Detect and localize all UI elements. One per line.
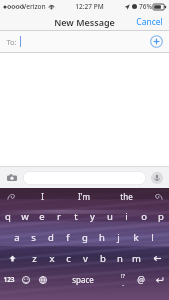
button[interactable]: x bbox=[43, 249, 60, 268]
staticText: 123 bbox=[3, 275, 15, 284]
button[interactable]: space bbox=[51, 270, 114, 289]
button[interactable]: m bbox=[128, 249, 145, 268]
staticText: w bbox=[21, 210, 29, 223]
staticText: c bbox=[66, 252, 71, 265]
staticText: 76% bbox=[139, 2, 152, 11]
staticText: @ bbox=[137, 274, 145, 286]
button[interactable]: d bbox=[42, 228, 59, 247]
button[interactable]: r bbox=[50, 207, 67, 226]
button[interactable]: @ bbox=[132, 270, 149, 289]
button[interactable]: p bbox=[152, 207, 169, 226]
button[interactable]: i bbox=[118, 207, 135, 226]
staticText: t bbox=[74, 210, 78, 223]
button[interactable]: t bbox=[67, 207, 84, 226]
staticText: q bbox=[5, 210, 11, 223]
button[interactable]: the bbox=[105, 188, 147, 204]
button[interactable]: Clipboard bbox=[0, 188, 22, 204]
button[interactable] bbox=[23, 171, 146, 185]
staticText: the bbox=[120, 191, 133, 202]
staticText: k bbox=[133, 231, 139, 244]
button[interactable]: Settings bbox=[147, 188, 169, 204]
button[interactable]: s bbox=[25, 228, 42, 247]
button[interactable]: h bbox=[93, 228, 110, 247]
staticText: e bbox=[39, 210, 45, 223]
staticText: a bbox=[14, 231, 20, 244]
button[interactable]: Shift bbox=[0, 249, 25, 268]
button[interactable]: Voice input bbox=[150, 171, 164, 185]
staticText: New Message bbox=[54, 16, 115, 28]
button[interactable]: l bbox=[144, 228, 161, 247]
staticText: h bbox=[99, 231, 105, 244]
button[interactable]: j bbox=[110, 228, 127, 247]
button[interactable]: v bbox=[77, 249, 94, 268]
button[interactable]: o bbox=[135, 207, 152, 226]
staticText: r bbox=[57, 210, 61, 223]
staticText: Cancel bbox=[136, 16, 163, 28]
staticText: To: bbox=[6, 37, 17, 47]
button[interactable]: y bbox=[84, 207, 101, 226]
staticText: . bbox=[122, 279, 124, 288]
staticText: I'm bbox=[78, 191, 90, 202]
staticText: o bbox=[141, 210, 147, 223]
staticText: x bbox=[49, 252, 55, 265]
button[interactable]: I'm bbox=[63, 188, 105, 204]
staticText: z bbox=[32, 252, 37, 265]
button[interactable]: Language bbox=[34, 270, 51, 289]
staticText: I bbox=[41, 191, 44, 202]
staticText: n bbox=[117, 252, 123, 265]
button[interactable]: Camera bbox=[5, 171, 19, 185]
button[interactable]: n bbox=[111, 249, 128, 268]
staticText: u bbox=[107, 210, 113, 223]
button[interactable]: c bbox=[60, 249, 77, 268]
button[interactable]: Backspace bbox=[145, 249, 169, 268]
staticText: j bbox=[117, 231, 120, 244]
button[interactable]: f bbox=[59, 228, 76, 247]
staticText: d bbox=[48, 231, 54, 244]
button[interactable]: k bbox=[127, 228, 144, 247]
staticText: v bbox=[83, 252, 88, 265]
button[interactable]: a bbox=[8, 228, 25, 247]
button[interactable]: Cancel bbox=[130, 13, 169, 30]
staticText: m bbox=[132, 252, 141, 265]
staticText: s bbox=[31, 231, 36, 244]
button[interactable]: e bbox=[33, 207, 50, 226]
button[interactable]: g bbox=[76, 228, 93, 247]
button[interactable]: Add contact bbox=[150, 35, 163, 48]
button[interactable]: z bbox=[25, 249, 43, 268]
button[interactable]: u bbox=[101, 207, 118, 226]
button[interactable]: I bbox=[22, 188, 63, 204]
staticText: b bbox=[100, 252, 106, 265]
button[interactable]: Emoji bbox=[17, 270, 34, 289]
staticText: space bbox=[72, 274, 94, 285]
button[interactable]: !? bbox=[114, 270, 132, 289]
staticText: l bbox=[151, 231, 154, 244]
button[interactable]: 123 bbox=[0, 270, 17, 289]
button[interactable]: To: bbox=[0, 31, 169, 52]
staticText: Verizon bbox=[22, 2, 46, 11]
staticText: f bbox=[66, 231, 70, 244]
button[interactable]: Enter bbox=[149, 270, 169, 289]
staticText: p bbox=[158, 210, 164, 223]
button[interactable]: b bbox=[94, 249, 111, 268]
staticText: g bbox=[82, 231, 88, 244]
staticText: y bbox=[90, 210, 95, 223]
staticText: i bbox=[125, 210, 128, 223]
button[interactable]: w bbox=[16, 207, 33, 226]
button[interactable]: q bbox=[0, 207, 16, 226]
staticText: 12:27 PM bbox=[75, 2, 104, 11]
staticText: !? bbox=[121, 272, 125, 279]
